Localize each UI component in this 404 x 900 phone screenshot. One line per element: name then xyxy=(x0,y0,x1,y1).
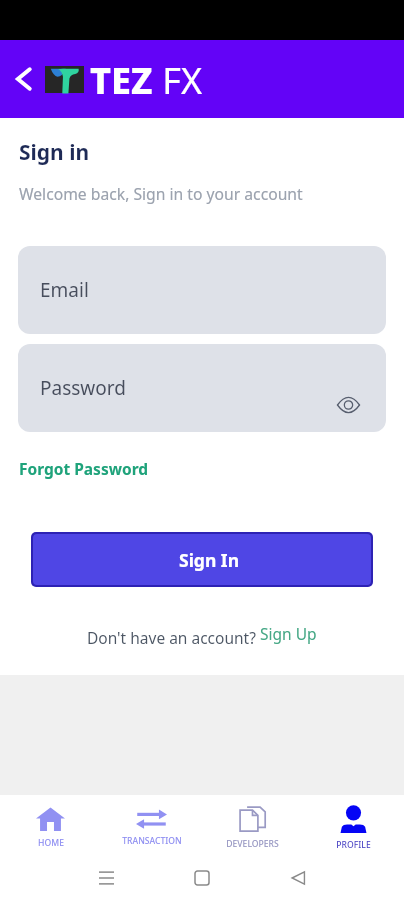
button[interactable]: Forgot Password xyxy=(19,458,149,479)
button[interactable]: DEVELOPERS xyxy=(202,795,303,856)
staticText: Don't have an account? xyxy=(87,627,256,648)
button[interactable]: Back xyxy=(6,62,40,96)
staticText: DEVELOPERS xyxy=(226,838,279,850)
staticText: HOME xyxy=(38,837,64,849)
staticText: Forgot Password xyxy=(19,458,149,479)
staticText: TRANSACTION xyxy=(122,835,182,847)
button[interactable]: PROFILE xyxy=(303,795,404,856)
button[interactable]: Show password xyxy=(333,390,363,420)
staticText: Sign Up xyxy=(256,623,317,644)
button[interactable]: HOME xyxy=(0,795,101,856)
button[interactable]: Home xyxy=(154,856,250,900)
staticText: FX xyxy=(153,56,203,105)
button[interactable]: Sign Up xyxy=(256,627,317,648)
staticText: Password xyxy=(40,375,126,401)
button[interactable]: Sign In xyxy=(33,534,371,585)
button[interactable]: Password xyxy=(18,344,386,432)
staticText: TEZ xyxy=(90,56,153,105)
button[interactable]: Back xyxy=(250,856,346,900)
staticText: Email xyxy=(40,277,89,303)
staticText: PROFILE xyxy=(336,839,371,851)
staticText: Sign In xyxy=(179,548,240,572)
staticText: Welcome back, Sign in to your account xyxy=(19,183,303,204)
button[interactable]: TRANSACTION xyxy=(101,795,202,856)
button[interactable]: Recent apps xyxy=(58,856,154,900)
button[interactable]: Email xyxy=(18,246,386,334)
staticText: Sign in xyxy=(19,138,90,167)
